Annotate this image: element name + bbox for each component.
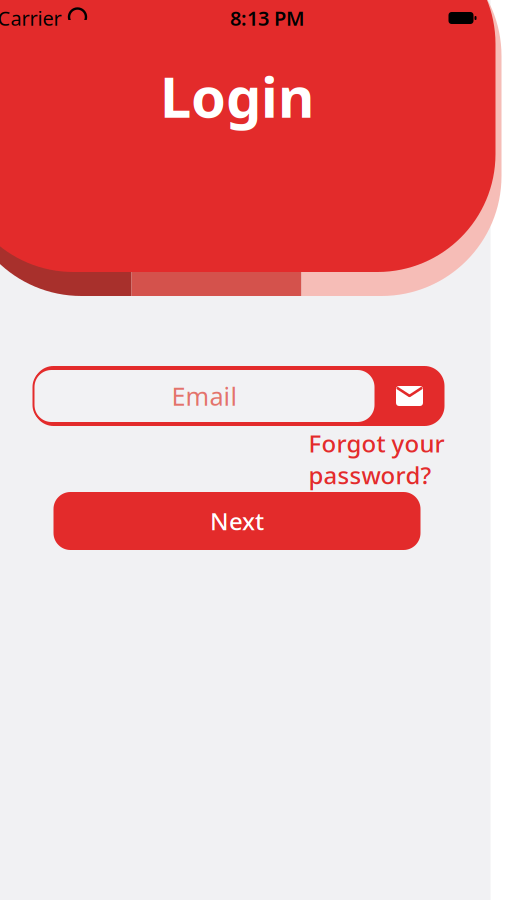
button[interactable]: Email — [33, 369, 375, 423]
button[interactable]: Email — [379, 366, 439, 426]
staticText: Login — [160, 59, 314, 133]
button[interactable]: Next — [53, 492, 420, 550]
staticText: Next — [210, 505, 264, 537]
staticText: 8:13 PM — [230, 5, 305, 31]
button[interactable]: Forgot your password? — [194, 444, 444, 474]
staticText: Carrier — [0, 5, 61, 31]
staticText: Email — [171, 379, 237, 413]
staticText: Forgot your password? — [308, 427, 444, 491]
